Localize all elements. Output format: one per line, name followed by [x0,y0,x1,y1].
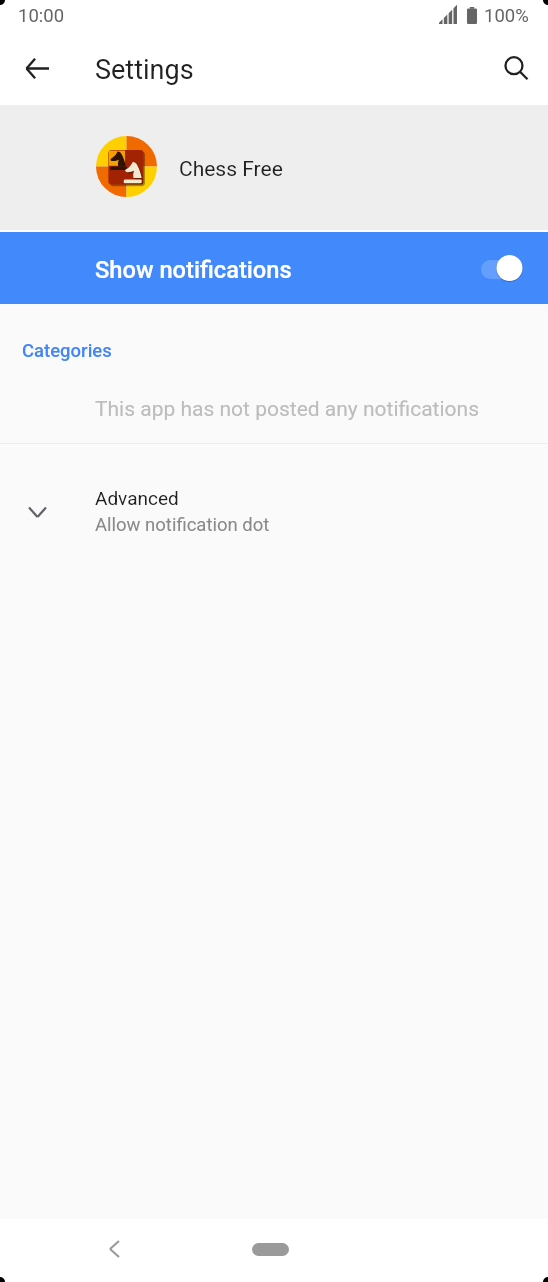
staticText: This app has not posted any notification… [95,397,479,422]
staticText: Settings [95,54,194,86]
staticText: Advanced [95,487,179,509]
staticText: Show notifications [95,256,292,284]
staticText: 100% [484,5,529,27]
button[interactable]: Search [494,46,542,94]
button[interactable]: Advanced [0,444,548,554]
button[interactable]: Home [248,1231,292,1268]
button[interactable]: Show notifications [0,232,548,304]
staticText: Categories [22,340,112,362]
staticText: Chess Free [179,157,283,182]
staticText: 10:00 [18,5,65,27]
staticText: Allow notification dot [95,514,270,536]
button[interactable]: Back [92,1227,136,1271]
button[interactable]: Back [9,40,65,96]
